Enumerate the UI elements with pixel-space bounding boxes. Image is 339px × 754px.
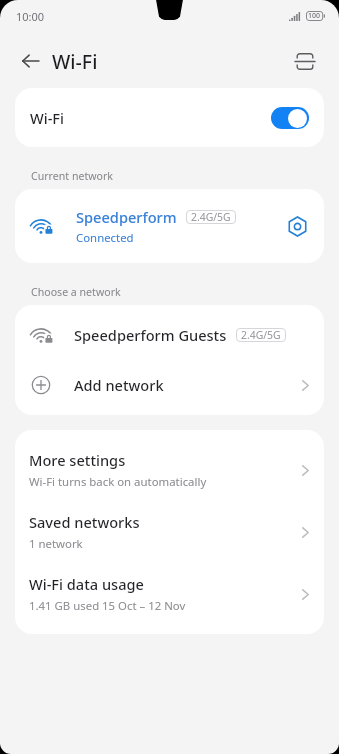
- staticText: Wi-Fi turns back on automatically: [29, 474, 207, 490]
- staticText: Wi-Fi: [30, 108, 65, 128]
- staticText: 10:00: [16, 9, 45, 24]
- button[interactable]: Back: [12, 43, 48, 79]
- staticText: Connected: [76, 230, 134, 246]
- button[interactable]: More settings: [15, 439, 324, 501]
- staticText: 100: [308, 11, 321, 21]
- staticText: 2.4G/5G: [241, 328, 281, 342]
- button[interactable]: Speedperform: [15, 189, 324, 263]
- staticText: Add network: [74, 375, 164, 395]
- button[interactable]: Wi-Fi data usage: [15, 563, 324, 625]
- staticText: More settings: [29, 450, 126, 470]
- staticText: 2.4G/5G: [191, 210, 231, 224]
- staticText: 1.41 GB used 15 Oct – 12 Nov: [29, 598, 186, 614]
- staticText: Speedperform Guests: [74, 325, 227, 345]
- staticText: Wi-Fi data usage: [29, 574, 144, 594]
- button[interactable]: Wi-Fi: [15, 88, 324, 147]
- staticText: 1 network: [29, 536, 83, 552]
- staticText: Speedperform: [76, 207, 177, 227]
- staticText: Saved networks: [29, 512, 140, 532]
- button[interactable]: Network details: [279, 208, 315, 244]
- button[interactable]: Speedperform Guests: [15, 310, 324, 360]
- button[interactable]: Split screen: [287, 43, 323, 79]
- staticText: Wi-Fi: [52, 48, 98, 75]
- button[interactable]: Saved networks: [15, 501, 324, 563]
- button[interactable]: Add network: [15, 360, 324, 410]
- staticText: Current network: [31, 169, 113, 183]
- staticText: Choose a network: [31, 285, 121, 299]
